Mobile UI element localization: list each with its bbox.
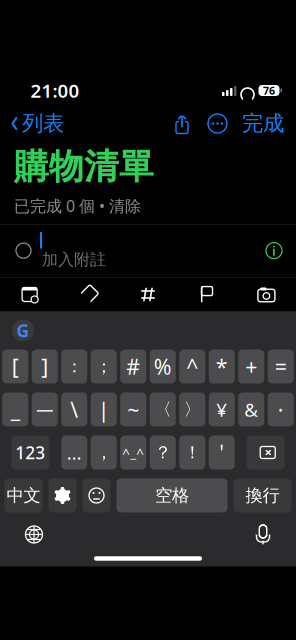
button[interactable]: Settings — [48, 478, 76, 512]
staticText: = — [275, 352, 287, 381]
staticText: ^ — [186, 352, 198, 381]
staticText: 76 — [263, 83, 275, 98]
button[interactable]: ' — [209, 435, 235, 469]
button[interactable]: _ — [2, 392, 28, 426]
staticText: 123 — [15, 441, 45, 464]
button[interactable]: More — [199, 110, 236, 137]
button[interactable]: Google — [0, 315, 34, 346]
button[interactable]: ¥ — [209, 392, 235, 426]
button[interactable]: + — [238, 349, 264, 383]
button[interactable]: Delete — [247, 435, 285, 469]
button[interactable]: 完成 — [236, 104, 296, 143]
staticText: … — [67, 440, 82, 465]
staticText: # — [126, 352, 140, 381]
button[interactable]: 123 — [11, 435, 49, 469]
button[interactable]: Emoji — [82, 478, 110, 512]
button[interactable]: Tag — [118, 278, 178, 311]
button[interactable]: & — [238, 392, 264, 426]
staticText: % — [154, 352, 172, 381]
staticText: 21:00 — [30, 78, 79, 103]
staticText: i — [272, 242, 276, 259]
button[interactable]: 〈 — [150, 392, 176, 426]
staticText: ！ — [184, 442, 201, 463]
staticText: 購物清單 — [14, 145, 154, 188]
button[interactable]: | — [91, 392, 117, 426]
staticText: ： — [66, 356, 83, 377]
staticText: ~ — [127, 395, 139, 424]
button[interactable]: Location — [59, 278, 118, 311]
staticText: & — [244, 397, 258, 422]
button[interactable]: 列表 — [0, 104, 64, 143]
button[interactable]: \ — [61, 392, 87, 426]
button[interactable]: * — [209, 349, 235, 383]
staticText: ； — [95, 356, 112, 377]
button[interactable]: Share — [165, 109, 199, 137]
button[interactable]: ： — [61, 349, 87, 383]
button[interactable]: ！ — [179, 435, 205, 469]
button[interactable]: ； — [91, 349, 117, 383]
button[interactable]: # — [120, 349, 146, 383]
button[interactable]: 中文 — [4, 478, 42, 512]
staticText: ？ — [154, 442, 171, 463]
staticText: + — [245, 352, 257, 381]
button[interactable]: ^ — [179, 349, 205, 383]
staticText: ¥ — [216, 397, 227, 422]
staticText: ' — [219, 438, 224, 467]
staticText: \ — [70, 395, 78, 424]
button[interactable]: ？ — [150, 435, 176, 469]
staticText: 完成 — [242, 110, 284, 137]
staticText: 列表 — [22, 110, 64, 137]
staticText: [ — [12, 352, 19, 381]
button[interactable]: ， — [91, 435, 117, 469]
staticText: ^_^ — [122, 444, 144, 461]
button[interactable]: Date — [0, 278, 59, 311]
staticText: _ — [11, 395, 20, 424]
button[interactable]: Details — [266, 238, 296, 263]
button[interactable]: = — [268, 349, 294, 383]
staticText: 換行 — [245, 485, 279, 506]
button[interactable]: — — [32, 392, 58, 426]
staticText: ， — [95, 442, 112, 463]
staticText: · — [278, 395, 284, 424]
button[interactable]: 〉 — [179, 392, 205, 426]
staticText: 空格 — [155, 485, 189, 506]
button[interactable]: Dictation — [254, 517, 296, 551]
staticText: 已完成 0 個 • 清除 — [14, 195, 141, 216]
button[interactable]: ] — [32, 349, 58, 383]
staticText: 加入附註 — [42, 250, 106, 269]
button[interactable]: Camera — [237, 278, 296, 311]
staticText: * — [216, 352, 228, 381]
button[interactable]: % — [150, 349, 176, 383]
button[interactable]: · — [268, 392, 294, 426]
staticText: — — [36, 398, 53, 421]
button[interactable]: [ — [2, 349, 28, 383]
staticText: | — [98, 395, 110, 424]
button[interactable]: ^_^ — [120, 435, 146, 469]
staticText: ] — [41, 352, 48, 381]
staticText: 〉 — [184, 399, 201, 420]
button[interactable]: … — [61, 435, 87, 469]
button[interactable]: ~ — [120, 392, 146, 426]
button[interactable]: 換行 — [233, 478, 291, 512]
staticText: G — [16, 319, 29, 342]
button[interactable]: 空格 — [116, 478, 227, 512]
button[interactable]: Next keyboard — [0, 518, 44, 550]
staticText: 〈 — [154, 399, 171, 420]
button[interactable]: Flag — [178, 278, 237, 311]
staticText: 中文 — [6, 485, 40, 506]
